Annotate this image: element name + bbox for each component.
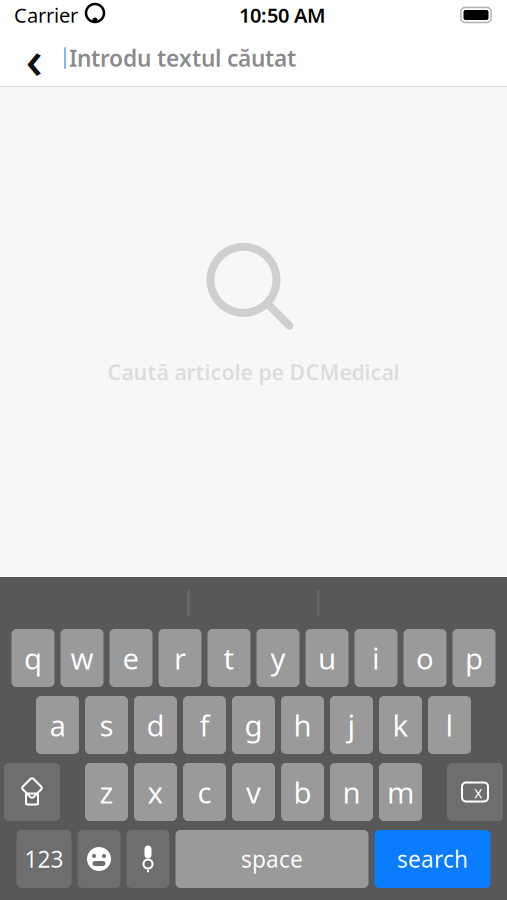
button[interactable]: k <box>379 696 422 754</box>
button[interactable]: Dictate <box>126 830 169 888</box>
button[interactable]: q <box>11 629 54 687</box>
staticText: 10:50 AM <box>239 2 326 28</box>
button[interactable]: a <box>36 696 79 754</box>
staticText: o <box>416 638 434 677</box>
staticText: g <box>244 705 262 744</box>
staticText: y <box>270 638 285 677</box>
staticText: q <box>24 638 42 677</box>
staticText: Carrier <box>14 2 78 28</box>
staticText: k <box>392 705 408 744</box>
button[interactable]: d <box>134 696 177 754</box>
staticText: i <box>372 638 380 677</box>
button[interactable]: h <box>281 696 324 754</box>
button[interactable]: Emoji <box>77 830 120 888</box>
button[interactable]: Delete <box>447 763 503 821</box>
button[interactable]: Introdu textul căutat <box>66 43 296 73</box>
button[interactable]: c <box>183 763 226 821</box>
button[interactable]: t <box>207 629 250 687</box>
button[interactable]: i <box>354 629 397 687</box>
staticText: a <box>49 705 65 744</box>
staticText: f <box>199 705 209 744</box>
button[interactable]: j <box>330 696 373 754</box>
button[interactable]: s <box>85 696 128 754</box>
button[interactable]: r <box>158 629 201 687</box>
staticText: n <box>342 772 360 811</box>
staticText: v <box>246 772 261 811</box>
staticText: search <box>397 844 468 874</box>
staticText: p <box>465 638 483 677</box>
button[interactable]: b <box>281 763 324 821</box>
button[interactable]: g <box>232 696 275 754</box>
staticText: l <box>445 705 453 744</box>
staticText: s <box>99 705 113 744</box>
staticText: d <box>146 705 164 744</box>
button[interactable]: 123 <box>16 830 71 888</box>
button[interactable]: o <box>403 629 446 687</box>
staticText: w <box>70 638 93 677</box>
button[interactable]: e <box>109 629 152 687</box>
staticText: space <box>241 844 303 874</box>
staticText: ‹ <box>25 23 42 93</box>
button[interactable]: Back <box>12 36 56 80</box>
staticText: 123 <box>24 844 63 874</box>
staticText: b <box>293 772 311 811</box>
staticText: u <box>318 638 336 677</box>
button[interactable]: p <box>452 629 495 687</box>
staticText: e <box>122 638 139 677</box>
button[interactable]: w <box>60 629 103 687</box>
staticText: z <box>99 772 113 811</box>
button[interactable]: space <box>175 830 368 888</box>
staticText: x <box>147 772 163 811</box>
button[interactable]: y <box>256 629 299 687</box>
staticText: x <box>474 781 482 803</box>
staticText: Caută articole pe DCMedical <box>107 358 399 386</box>
staticText: Introdu textul căutat <box>69 43 296 73</box>
button[interactable]: v <box>232 763 275 821</box>
staticText: r <box>174 638 186 677</box>
button[interactable]: search <box>374 830 490 888</box>
button[interactable]: n <box>330 763 373 821</box>
button[interactable]: l <box>428 696 471 754</box>
staticText: t <box>223 638 234 677</box>
button[interactable]: x <box>134 763 177 821</box>
staticText: c <box>197 772 211 811</box>
button[interactable]: z <box>85 763 128 821</box>
staticText: h <box>293 705 311 744</box>
staticText: j <box>347 705 355 744</box>
button[interactable]: u <box>305 629 348 687</box>
button[interactable]: f <box>183 696 226 754</box>
button[interactable]: Shift <box>4 763 60 821</box>
staticText: m <box>387 772 414 811</box>
button[interactable]: m <box>379 763 422 821</box>
